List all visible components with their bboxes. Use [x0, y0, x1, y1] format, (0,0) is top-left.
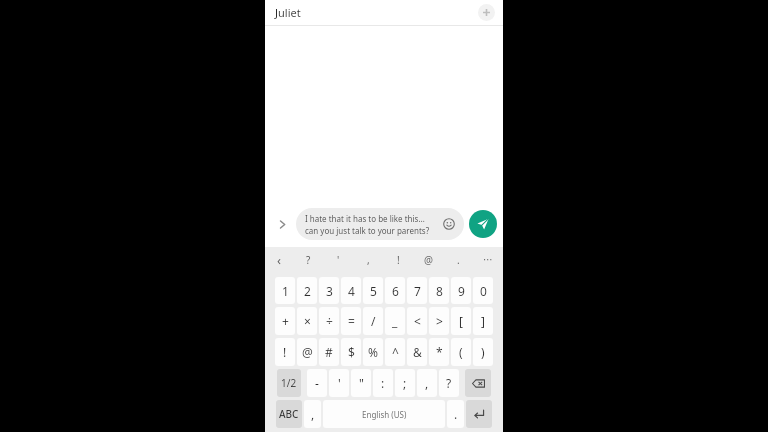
button[interactable]: 5: [363, 277, 383, 304]
staticText: !: [397, 253, 400, 267]
button[interactable]: 3: [319, 277, 339, 304]
button[interactable]: 1/2: [277, 369, 301, 397]
staticText: %: [368, 344, 378, 360]
button[interactable]: .: [443, 247, 473, 273]
button[interactable]: ;: [395, 369, 415, 397]
button[interactable]: @: [297, 338, 317, 366]
staticText: =: [348, 313, 355, 329]
button[interactable]: 0: [473, 277, 493, 304]
button[interactable]: ×: [297, 307, 317, 335]
button[interactable]: ): [473, 338, 493, 366]
button[interactable]: @: [413, 247, 443, 273]
staticText: Juliet: [275, 5, 301, 20]
button[interactable]: ^: [385, 338, 405, 366]
button[interactable]: >: [429, 307, 449, 335]
button[interactable]: 4: [341, 277, 361, 304]
staticText: ): [481, 344, 485, 360]
button[interactable]: .: [447, 400, 464, 428]
button[interactable]: Expand: [271, 213, 293, 235]
button[interactable]: -: [307, 369, 327, 397]
staticText: *: [436, 344, 443, 360]
staticText: :: [381, 375, 385, 391]
staticText: ,: [425, 375, 429, 391]
button[interactable]: ': [329, 369, 349, 397]
button[interactable]: ABC: [276, 400, 302, 428]
staticText: can you just talk to your parents?: [305, 225, 430, 236]
staticText: 1/2: [281, 376, 297, 390]
button[interactable]: _: [385, 307, 405, 335]
button[interactable]: $: [341, 338, 361, 366]
button[interactable]: 1: [275, 277, 295, 304]
staticText: ⋯: [483, 254, 493, 266]
button[interactable]: !: [383, 247, 413, 273]
button[interactable]: :: [373, 369, 393, 397]
staticText: ': [337, 253, 340, 267]
button[interactable]: <: [407, 307, 427, 335]
button[interactable]: English (US): [323, 400, 445, 428]
button[interactable]: ,: [417, 369, 437, 397]
button[interactable]: ⋯: [473, 247, 503, 273]
button[interactable]: #: [319, 338, 339, 366]
staticText: 6: [392, 283, 399, 299]
staticText: ×: [304, 313, 311, 329]
button[interactable]: ]: [473, 307, 493, 335]
staticText: 7: [414, 283, 421, 299]
button[interactable]: ": [351, 369, 371, 397]
staticText: 4: [348, 283, 355, 299]
button[interactable]: Backspace: [465, 369, 491, 397]
button[interactable]: Add: [478, 4, 495, 21]
staticText: (: [459, 344, 463, 360]
button[interactable]: ?: [439, 369, 459, 397]
button[interactable]: 2: [297, 277, 317, 304]
staticText: 8: [436, 283, 443, 299]
staticText: ‹: [277, 251, 282, 269]
button[interactable]: 8: [429, 277, 449, 304]
staticText: /: [371, 313, 376, 329]
button[interactable]: ?: [294, 247, 323, 273]
button[interactable]: 6: [385, 277, 405, 304]
staticText: ": [359, 375, 364, 391]
button[interactable]: ÷: [319, 307, 339, 335]
button[interactable]: ‹: [265, 247, 294, 273]
button[interactable]: (: [451, 338, 471, 366]
staticText: ': [338, 375, 341, 391]
button[interactable]: ,: [353, 247, 383, 273]
staticText: ,: [311, 406, 315, 422]
button[interactable]: =: [341, 307, 361, 335]
staticText: ;: [403, 375, 407, 391]
button[interactable]: %: [363, 338, 383, 366]
staticText: 9: [458, 283, 465, 299]
staticText: .: [454, 406, 458, 422]
staticText: +: [282, 313, 289, 329]
staticText: I hate that it has to be like this…: [305, 213, 425, 224]
button[interactable]: &: [407, 338, 427, 366]
button[interactable]: +: [275, 307, 295, 335]
staticText: ?: [306, 253, 311, 267]
staticText: ÷: [326, 313, 333, 329]
button[interactable]: [: [451, 307, 471, 335]
button[interactable]: *: [429, 338, 449, 366]
staticText: #: [325, 344, 333, 360]
staticText: ^: [392, 344, 399, 360]
staticText: .: [457, 253, 460, 267]
button[interactable]: Emoji: [440, 215, 458, 233]
staticText: 3: [326, 283, 333, 299]
staticText: ]: [481, 313, 485, 329]
staticText: _: [392, 313, 398, 329]
button[interactable]: Send: [469, 210, 497, 238]
staticText: ,: [367, 253, 370, 267]
button[interactable]: /: [363, 307, 383, 335]
button[interactable]: ': [323, 247, 353, 273]
staticText: @: [424, 253, 433, 267]
button[interactable]: 9: [451, 277, 471, 304]
button[interactable]: ,: [304, 400, 321, 428]
staticText: ABC: [279, 407, 299, 421]
button[interactable]: 7: [407, 277, 427, 304]
staticText: -: [315, 375, 319, 391]
staticText: 5: [370, 283, 377, 299]
staticText: <: [414, 313, 421, 329]
button[interactable]: Enter: [466, 400, 492, 428]
staticText: ?: [446, 375, 452, 391]
button[interactable]: I hate that it has to be like this…: [296, 208, 464, 240]
button[interactable]: !: [275, 338, 295, 366]
